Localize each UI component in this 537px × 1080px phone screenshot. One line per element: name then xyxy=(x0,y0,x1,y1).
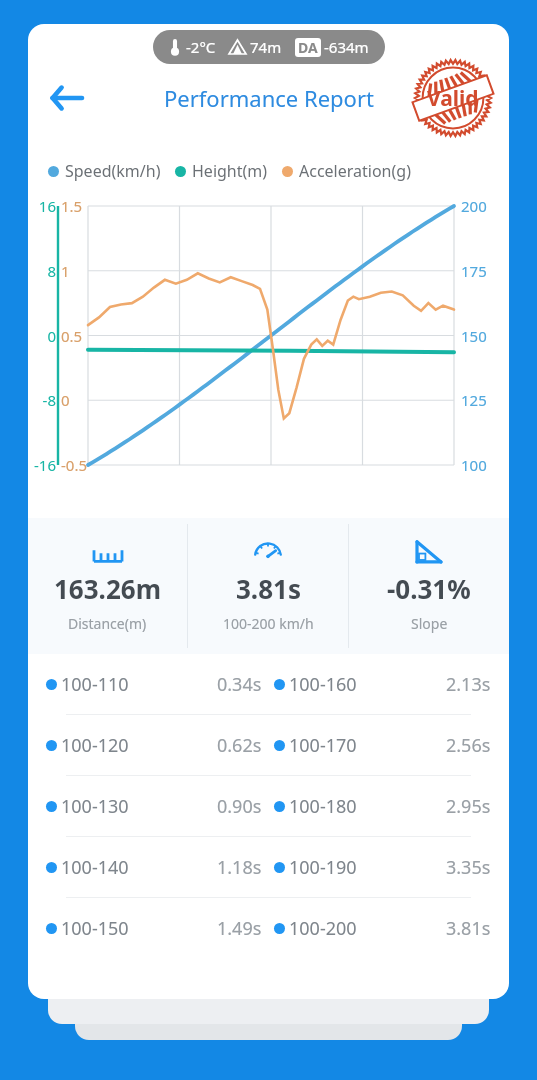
staticText: 100-140 xyxy=(61,855,129,880)
button[interactable]: 163.26m xyxy=(28,518,187,654)
staticText: 3.81s xyxy=(236,571,301,606)
staticText: 3.81s xyxy=(446,916,491,941)
staticText: 163.26m xyxy=(54,571,162,606)
staticText: 100-200 xyxy=(289,916,357,941)
staticText: 0 xyxy=(61,390,70,410)
staticText: 150 xyxy=(461,326,487,346)
staticText: 16 xyxy=(28,196,56,216)
button[interactable]: 3.81s xyxy=(188,518,348,654)
staticText: 2.56s xyxy=(446,733,491,758)
staticText: 100-130 xyxy=(61,794,129,819)
staticText: 100-200 km/h xyxy=(223,614,314,633)
staticText: 100-170 xyxy=(289,733,357,758)
staticText: 125 xyxy=(461,390,487,410)
staticText: 0 xyxy=(28,326,56,346)
button[interactable]: 100-120 xyxy=(28,715,509,775)
button[interactable]: Back xyxy=(36,69,94,127)
staticText: 175 xyxy=(461,261,487,281)
staticText: Valid xyxy=(427,84,479,113)
staticText: Slope xyxy=(411,614,448,633)
staticText: -0.31% xyxy=(387,571,471,606)
button[interactable]: 100-140 xyxy=(28,837,509,897)
staticText: DA xyxy=(298,38,318,57)
staticText: Distance(m) xyxy=(68,614,147,633)
staticText: 100-110 xyxy=(61,672,129,697)
staticText: -16 xyxy=(28,455,56,475)
staticText: 74m xyxy=(250,37,282,57)
button[interactable]: 100-150 xyxy=(28,898,509,958)
staticText: Height(m) xyxy=(192,160,268,182)
staticText: -2°C xyxy=(186,37,216,57)
staticText: -8 xyxy=(28,390,56,410)
staticText: 100-120 xyxy=(61,733,129,758)
staticText: 0.34s xyxy=(217,672,262,697)
staticText: Performance Report xyxy=(164,83,374,113)
staticText: 100-160 xyxy=(289,672,357,697)
staticText: 100-190 xyxy=(289,855,357,880)
button[interactable]: -0.31% xyxy=(349,518,509,654)
staticText: 100 xyxy=(461,455,487,475)
staticText: 8 xyxy=(28,261,56,281)
staticText: 1.49s xyxy=(217,916,262,941)
staticText: 200 xyxy=(461,196,487,216)
staticText: Speed(km/h) xyxy=(65,160,161,182)
staticText: 0.90s xyxy=(217,794,262,819)
staticText: 100-180 xyxy=(289,794,357,819)
staticText: 1.18s xyxy=(217,855,262,880)
staticText: 1 xyxy=(61,261,70,281)
staticText: 1.5 xyxy=(61,196,83,216)
staticText: 100-150 xyxy=(61,916,129,941)
staticText: 0.62s xyxy=(217,733,262,758)
staticText: 3.35s xyxy=(446,855,491,880)
staticText: -634m xyxy=(324,37,369,57)
button[interactable]: 100-130 xyxy=(28,776,509,836)
staticText: 2.13s xyxy=(446,672,491,697)
staticText: 2.95s xyxy=(446,794,491,819)
staticText: -0.5 xyxy=(61,455,88,475)
staticText: 0.5 xyxy=(61,326,83,346)
staticText: Acceleration(g) xyxy=(299,160,411,182)
button[interactable]: 100-110 xyxy=(28,654,509,714)
